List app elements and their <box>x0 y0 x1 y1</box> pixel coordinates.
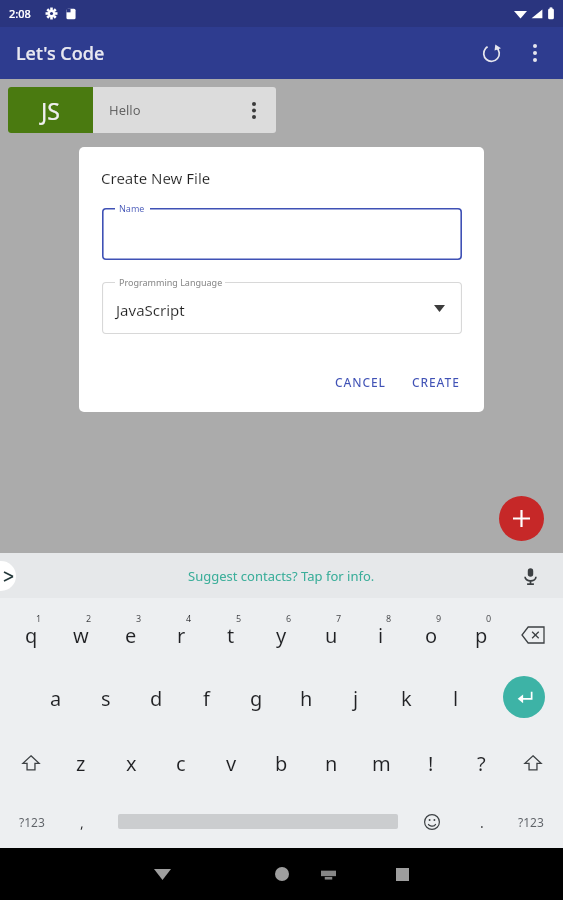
staticText: 3 <box>136 612 142 624</box>
staticText: ? <box>477 750 486 777</box>
button[interactable]: m <box>356 740 406 786</box>
staticText: CANCEL <box>335 374 386 390</box>
button[interactable]: CANCEL <box>325 366 396 398</box>
button[interactable]: v <box>206 740 256 786</box>
button[interactable]: ! <box>406 740 456 786</box>
button[interactable]: Select language <box>422 291 456 325</box>
staticText: Create New File <box>101 168 211 188</box>
staticText: s <box>101 685 111 712</box>
button[interactable]: g <box>231 675 281 721</box>
staticText: l <box>453 685 459 712</box>
staticText: g <box>250 685 263 712</box>
button[interactable]: Home <box>258 850 306 898</box>
staticText: 7 <box>336 612 342 624</box>
button[interactable]: Suggest contacts? Tap for info. <box>188 567 375 585</box>
button[interactable]: Keyboard <box>306 852 350 896</box>
button[interactable]: Back <box>138 850 186 898</box>
staticText: m <box>372 750 391 777</box>
button[interactable]: q <box>6 612 56 658</box>
staticText: Name <box>119 202 145 214</box>
button[interactable]: t <box>206 612 256 658</box>
staticText: ! <box>428 750 434 777</box>
button[interactable]: f <box>181 675 231 721</box>
staticText: h <box>300 685 313 712</box>
staticText: p <box>475 622 488 649</box>
staticText: d <box>150 685 163 712</box>
staticText: 2:08 <box>9 6 31 21</box>
button[interactable]: k <box>381 675 431 721</box>
button[interactable]: ? <box>456 740 506 786</box>
staticText: 5 <box>236 612 242 624</box>
staticText: . <box>480 813 484 832</box>
staticText: f <box>203 685 210 712</box>
staticText: 2 <box>86 612 92 624</box>
staticText: n <box>325 750 338 777</box>
staticText: a <box>50 685 62 712</box>
button[interactable]: Voice input <box>513 559 547 593</box>
staticText: CREATE <box>412 374 460 390</box>
staticText: 1 <box>36 612 42 624</box>
staticText: 6 <box>286 612 292 624</box>
staticText: v <box>226 750 237 777</box>
button[interactable]: Refresh <box>469 31 513 75</box>
staticText: 0 <box>486 612 492 624</box>
button[interactable]: Enter <box>503 676 545 718</box>
staticText: 8 <box>386 612 392 624</box>
button[interactable]: Emoji <box>410 802 454 842</box>
button[interactable]: Backspace <box>508 612 558 658</box>
staticText: JS <box>41 95 60 126</box>
button[interactable]: Shift <box>508 740 558 786</box>
button[interactable]: File options <box>232 88 276 132</box>
button[interactable]: i <box>356 612 406 658</box>
button[interactable]: Expand suggestions <box>0 561 16 591</box>
staticText: ?123 <box>518 814 544 830</box>
staticText: , <box>80 813 84 832</box>
button[interactable]: l <box>431 675 481 721</box>
button[interactable]: z <box>56 740 106 786</box>
button[interactable]: w <box>56 612 106 658</box>
staticText: i <box>378 622 384 649</box>
button[interactable]: o <box>406 612 456 658</box>
staticText: u <box>325 622 338 649</box>
button[interactable]: x <box>106 740 156 786</box>
button[interactable]: u <box>306 612 356 658</box>
button[interactable]: n <box>306 740 356 786</box>
staticText: Let's Code <box>16 41 105 66</box>
staticText: e <box>125 622 137 649</box>
staticText: Programming Language <box>119 276 223 288</box>
staticText: j <box>353 685 359 712</box>
staticText: JavaScript <box>116 300 185 320</box>
button[interactable]: Recent apps <box>378 850 426 898</box>
button[interactable]: h <box>281 675 331 721</box>
staticText: Hello <box>109 101 232 119</box>
button[interactable]: j <box>331 675 381 721</box>
button[interactable]: a <box>31 675 81 721</box>
button[interactable]: CREATE <box>402 366 470 398</box>
button[interactable]: , <box>62 802 102 842</box>
staticText: t <box>227 622 235 649</box>
button[interactable]: b <box>256 740 306 786</box>
button[interactable]: e <box>106 612 156 658</box>
button[interactable]: Create new file <box>499 496 544 541</box>
staticText: ?123 <box>19 814 45 830</box>
staticText: k <box>401 685 412 712</box>
button[interactable]: ?123 <box>6 802 58 842</box>
staticText: w <box>73 622 89 649</box>
staticText: r <box>177 622 186 649</box>
staticText: y <box>276 622 287 649</box>
button[interactable]: More options <box>513 31 557 75</box>
staticText: z <box>76 750 86 777</box>
staticText: c <box>176 750 186 777</box>
button[interactable]: s <box>81 675 131 721</box>
button[interactable]: ?123 <box>505 802 557 842</box>
button[interactable]: c <box>156 740 206 786</box>
staticText: 4 <box>186 612 192 624</box>
button[interactable]: r <box>156 612 206 658</box>
button[interactable]: Shift <box>6 740 56 786</box>
button[interactable]: y <box>256 612 306 658</box>
button[interactable]: d <box>131 675 181 721</box>
button[interactable]: . <box>462 802 502 842</box>
button[interactable]: JS <box>8 87 276 133</box>
button[interactable]: p <box>456 612 506 658</box>
